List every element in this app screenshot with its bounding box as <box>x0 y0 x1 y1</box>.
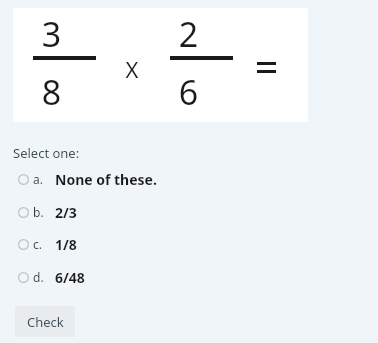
staticText: c. <box>33 236 42 252</box>
staticText: 6 <box>157 69 220 115</box>
staticText: None of these. <box>55 170 157 189</box>
staticText: 3 <box>20 11 83 57</box>
staticText: b. <box>33 204 44 220</box>
button[interactable]: d. <box>13 264 263 290</box>
staticText: X <box>117 54 147 84</box>
staticText: 8 <box>20 69 83 115</box>
button[interactable]: Check <box>15 306 75 337</box>
staticText: 6/48 <box>55 268 85 287</box>
staticText: Check <box>27 313 64 331</box>
button[interactable]: c. <box>13 231 263 257</box>
button[interactable]: b. <box>13 199 263 225</box>
staticText: a. <box>33 171 43 187</box>
staticText: Select one: <box>13 144 80 162</box>
staticText: d. <box>33 269 44 285</box>
staticText: 1/8 <box>55 235 77 254</box>
button[interactable]: a. <box>13 166 263 192</box>
staticText: 2/3 <box>55 203 77 222</box>
staticText: 2 <box>157 11 220 57</box>
